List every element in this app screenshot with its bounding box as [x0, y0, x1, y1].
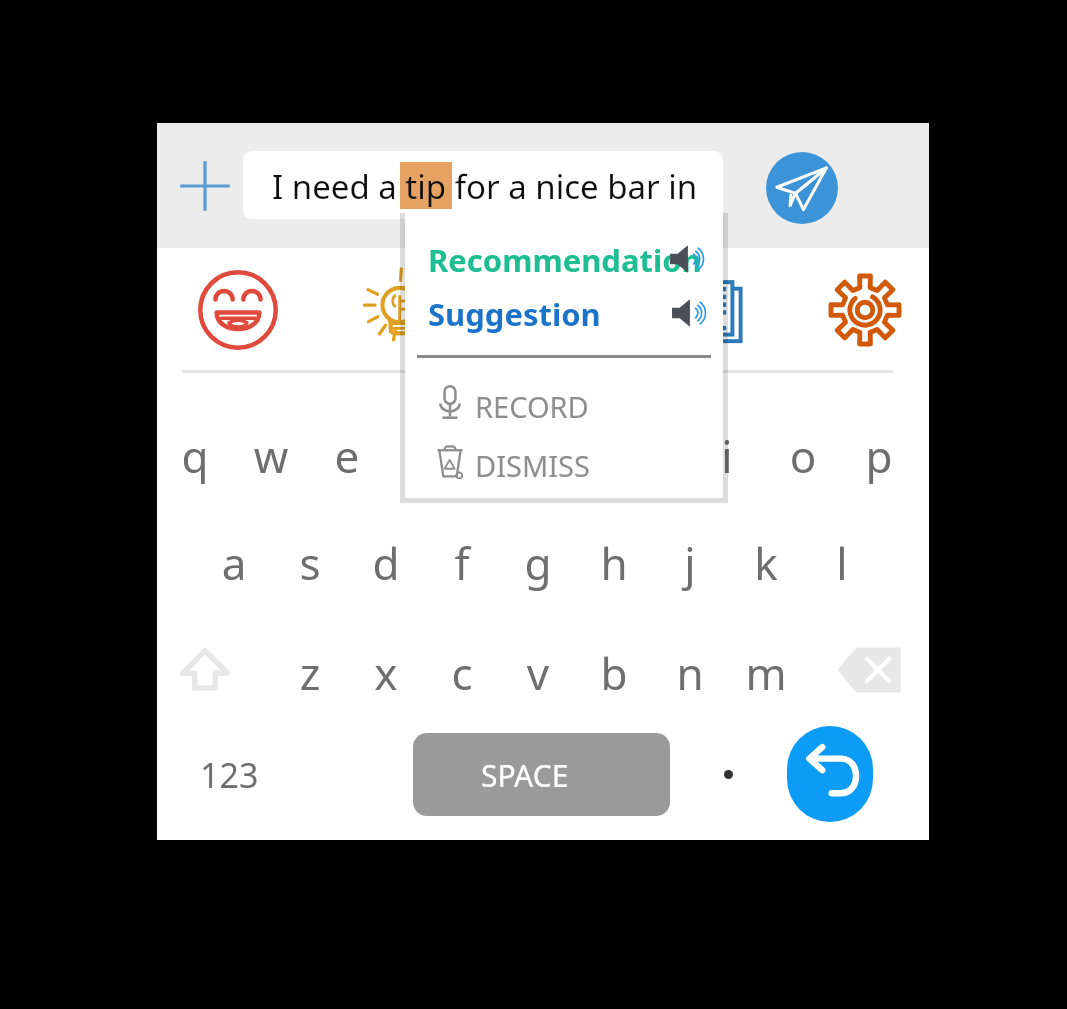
- staticText: f: [429, 533, 495, 599]
- button[interactable]: DISMISS: [405, 437, 723, 487]
- button[interactable]: Ideas: [357, 269, 439, 351]
- button[interactable]: x: [353, 635, 419, 701]
- button[interactable]: j: [657, 525, 723, 591]
- button[interactable]: Send: [766, 152, 838, 224]
- staticText: 123: [200, 752, 259, 798]
- button[interactable]: Shift: [173, 638, 237, 702]
- staticText: g: [505, 533, 571, 599]
- staticText: k: [733, 533, 799, 599]
- staticText: l: [809, 533, 875, 599]
- staticText: o: [770, 426, 836, 492]
- button[interactable]: Enter: [787, 726, 873, 822]
- button[interactable]: e: [314, 418, 380, 484]
- button[interactable]: Recommendation: [405, 232, 723, 280]
- button[interactable]: Documents: [675, 269, 757, 351]
- button[interactable]: t: [466, 418, 532, 484]
- button[interactable]: l: [809, 525, 875, 591]
- button[interactable]: Emotions: [197, 269, 279, 351]
- button[interactable]: z: [277, 635, 343, 701]
- button[interactable]: f: [429, 525, 495, 591]
- staticText: y: [542, 426, 608, 492]
- staticText: RECORD: [475, 387, 589, 426]
- button[interactable]: c: [429, 635, 495, 701]
- staticText: b: [581, 643, 647, 709]
- staticText: r: [390, 426, 456, 492]
- button[interactable]: Backspace: [836, 642, 904, 698]
- staticText: s: [277, 533, 343, 599]
- staticText: DISMISS: [475, 446, 590, 485]
- staticText: x: [353, 643, 419, 709]
- staticText: z: [277, 643, 343, 709]
- button[interactable]: Add: [174, 155, 236, 217]
- staticText: w: [238, 426, 304, 492]
- button[interactable]: h: [581, 525, 647, 591]
- button[interactable]: q: [162, 418, 228, 484]
- staticText: i: [694, 426, 760, 492]
- staticText: v: [505, 643, 571, 709]
- staticText: p: [846, 426, 912, 492]
- button[interactable]: i: [694, 418, 760, 484]
- staticText: Recommendation: [428, 239, 702, 281]
- button[interactable]: m: [733, 635, 799, 701]
- button[interactable]: 123: [200, 752, 270, 800]
- button[interactable]: v: [505, 635, 571, 701]
- button[interactable]: s: [277, 525, 343, 591]
- staticText: a: [201, 533, 267, 599]
- button[interactable]: Suggestion: [405, 286, 723, 334]
- button[interactable]: b: [581, 635, 647, 701]
- staticText: d: [353, 533, 419, 599]
- staticText: c: [429, 643, 495, 709]
- staticText: q: [162, 426, 228, 492]
- button[interactable]: I need a tip for a nice bar in Paris.: [243, 151, 723, 219]
- button[interactable]: w: [238, 418, 304, 484]
- staticText: Suggestion: [428, 293, 601, 335]
- staticText: I need a tip for a nice bar in Paris.: [272, 164, 723, 219]
- staticText: m: [733, 643, 799, 709]
- button[interactable]: SPACE: [413, 733, 670, 816]
- staticText: j: [657, 533, 723, 599]
- button[interactable]: Settings: [824, 269, 906, 351]
- button[interactable]: r: [390, 418, 456, 484]
- button[interactable]: g: [505, 525, 571, 591]
- button[interactable]: a: [201, 525, 267, 591]
- button[interactable]: k: [733, 525, 799, 591]
- button[interactable]: o: [770, 418, 836, 484]
- staticText: h: [581, 533, 647, 599]
- button[interactable]: RECORD: [405, 378, 723, 428]
- staticText: n: [657, 643, 723, 709]
- button[interactable]: d: [353, 525, 419, 591]
- staticText: e: [314, 426, 380, 492]
- button[interactable]: y: [542, 418, 608, 484]
- button[interactable]: p: [846, 418, 912, 484]
- button[interactable]: n: [657, 635, 723, 701]
- staticText: SPACE: [481, 755, 569, 796]
- staticText: t: [466, 426, 532, 492]
